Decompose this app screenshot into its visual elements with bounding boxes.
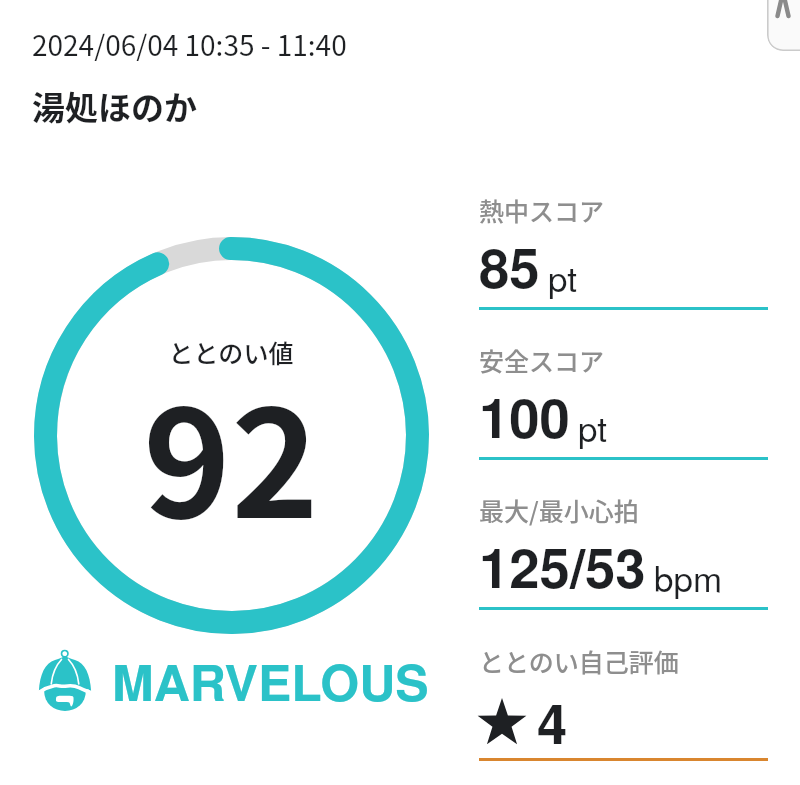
staticText: 85	[479, 227, 540, 305]
staticText: 125/53	[479, 527, 646, 605]
button[interactable]: ととのい自己評価	[479, 647, 768, 762]
staticText: 100	[479, 377, 570, 455]
staticText: 2024/06/04 10:35 - 11:40	[32, 24, 347, 65]
staticText: ととのい自己評価	[479, 643, 679, 679]
button[interactable]: 最大/最小心拍	[479, 496, 768, 611]
staticText: MARVELOUS	[112, 645, 429, 717]
staticText: pt	[548, 252, 578, 302]
staticText: 4	[537, 683, 568, 761]
staticText: ととのい値	[34, 334, 428, 370]
button[interactable]: ととのい値 92	[34, 237, 429, 634]
button[interactable]: MARVELOUS	[38, 645, 429, 717]
staticText: 安全スコア	[479, 342, 605, 378]
button[interactable]: 熱中スコア	[479, 196, 768, 311]
button[interactable]: 安全スコア	[479, 346, 768, 461]
button[interactable]: Walking activity	[767, 0, 800, 51]
staticText: 熱中スコア	[479, 192, 605, 228]
staticText: 最大/最小心拍	[479, 492, 639, 528]
staticText: 92	[34, 345, 428, 561]
staticText: pt	[578, 402, 608, 452]
staticText: bpm	[654, 552, 723, 602]
staticText: 湯処ほのか	[32, 82, 197, 130]
